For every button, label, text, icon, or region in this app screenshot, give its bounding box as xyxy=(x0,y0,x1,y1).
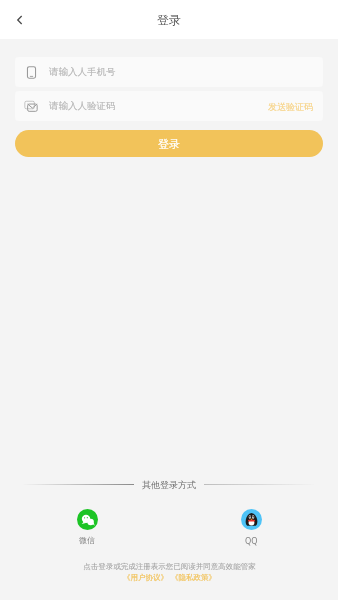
button[interactable]: QQ login xyxy=(236,504,266,550)
staticText: 其他登录方式 xyxy=(142,479,196,490)
button[interactable]: 发送验证码 xyxy=(266,97,315,116)
staticText: 请输入人验证码 xyxy=(49,100,116,112)
staticText: 登录 xyxy=(158,137,180,151)
staticText: 发送验证码 xyxy=(268,101,313,112)
button[interactable]: 《用户协议》 xyxy=(123,573,168,582)
button[interactable]: 登录 xyxy=(15,130,323,157)
staticText: 点击登录或完成注册表示您已阅读并同意高效能管家 xyxy=(83,562,256,571)
button[interactable]: Back xyxy=(4,4,36,36)
staticText: QQ xyxy=(245,535,258,546)
button[interactable]: WeChat login xyxy=(72,504,102,549)
staticText: 《用户协议》 xyxy=(123,573,168,582)
button[interactable]: 《隐私政策》 xyxy=(171,573,216,582)
staticText: 微信 xyxy=(79,535,95,545)
staticText: 登录 xyxy=(157,12,181,27)
staticText: 请输入人手机号 xyxy=(49,66,116,78)
button[interactable]: 请输入人手机号 xyxy=(15,57,323,87)
staticText: 《隐私政策》 xyxy=(171,573,216,582)
button[interactable]: 请输入人验证码 xyxy=(15,91,323,121)
